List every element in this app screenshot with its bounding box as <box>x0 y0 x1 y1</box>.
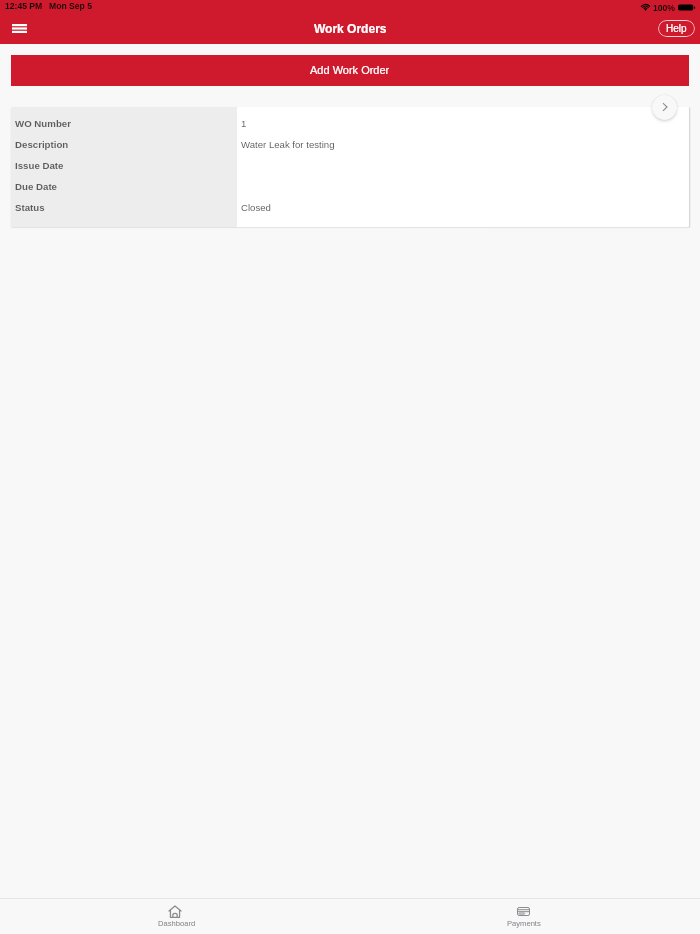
staticText: Description <box>15 139 69 150</box>
staticText: WO Number <box>15 118 71 129</box>
staticText: Dashboard <box>158 919 196 927</box>
staticText: Work Orders <box>314 22 387 35</box>
staticText: Add Work Order <box>310 64 390 76</box>
staticText: 100% <box>653 3 675 13</box>
staticText: Closed <box>241 202 271 213</box>
staticText: Payments <box>507 919 541 927</box>
staticText: Due Date <box>15 181 57 192</box>
button[interactable]: Next <box>652 95 677 120</box>
staticText: 1 <box>241 118 247 129</box>
button[interactable]: Dashboard <box>0 899 350 934</box>
staticText: Water Leak for testing <box>241 139 335 150</box>
staticText: Status <box>15 202 45 213</box>
button[interactable]: Menu <box>6 17 33 39</box>
button[interactable]: Add Work Order <box>11 55 689 86</box>
staticText: Issue Date <box>15 160 64 171</box>
button[interactable]: Help <box>658 20 695 37</box>
staticText: Help <box>666 23 687 34</box>
staticText: Mon Sep 5 <box>49 1 92 11</box>
staticText: 12:45 PM <box>5 1 43 11</box>
button[interactable]: Payments <box>350 899 700 934</box>
